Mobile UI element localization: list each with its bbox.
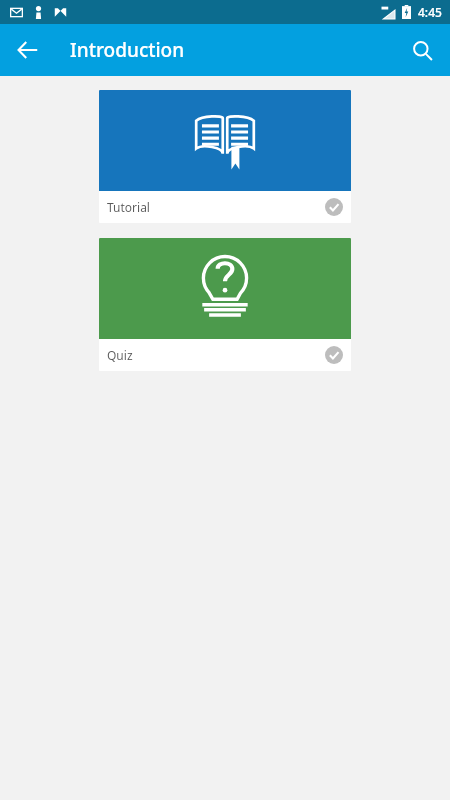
staticText: Introduction — [70, 37, 185, 63]
staticText: Tutorial — [107, 199, 325, 215]
button[interactable]: Search — [402, 30, 442, 70]
staticText: 4:45 — [418, 4, 442, 20]
staticText: Quiz — [107, 347, 325, 363]
button[interactable]: Back — [8, 30, 48, 70]
button[interactable]: Quiz — [99, 238, 351, 371]
button[interactable]: Tutorial — [99, 90, 351, 223]
